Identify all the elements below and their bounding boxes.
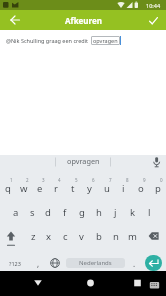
button[interactable]: , [30,255,46,271]
button[interactable]: Nederlands [66,258,125,268]
button[interactable]: c [57,224,73,248]
staticText: m [128,230,137,243]
staticText: t [71,182,75,195]
button[interactable] [111,271,166,296]
button[interactable]: u [98,176,115,200]
staticText: , [37,258,40,269]
button[interactable]: y [81,176,98,200]
button[interactable]: z [25,224,41,248]
button[interactable]: b [90,224,107,248]
staticText: c [63,230,68,243]
button[interactable]: g [73,200,90,224]
staticText: y [87,182,92,195]
staticText: . [133,258,136,269]
staticText: h [96,206,102,219]
button[interactable] [0,224,25,248]
button[interactable]: h [90,200,107,224]
staticText: e [37,182,43,195]
button[interactable]: p [149,176,166,200]
button[interactable]: s [24,200,40,224]
staticText: 9 [143,177,146,183]
staticText: 4 [58,177,61,183]
button[interactable]: m [124,224,141,248]
staticText: 8 [126,177,129,183]
staticText: ?123 [9,260,21,267]
button[interactable]: r [48,176,64,200]
button[interactable] [46,255,64,271]
button[interactable]: opvragen [67,156,100,166]
button[interactable]: v [73,224,90,248]
staticText: l [148,206,151,219]
button[interactable]: . [127,255,141,271]
button[interactable]: e [32,176,48,200]
button[interactable]: o [132,176,149,200]
staticText: v [79,230,84,243]
button[interactable] [147,14,159,26]
button[interactable]: x [41,224,57,248]
staticText: b [96,230,102,243]
button[interactable]: ?123 [0,255,30,271]
staticText: 2 [26,177,29,183]
button[interactable]: opvragen [93,37,118,44]
staticText: r [54,182,58,195]
staticText: a [13,206,19,219]
button[interactable]: q [0,176,16,200]
staticText: j [114,206,117,219]
staticText: opvragen [93,37,118,44]
staticText: d [45,206,51,219]
button[interactable]: l [141,200,158,224]
staticText: 7 [109,177,112,183]
button[interactable]: f [56,200,73,224]
button[interactable]: k [124,200,141,224]
button[interactable] [56,271,111,296]
staticText: Afkeuren [65,15,102,26]
button[interactable] [8,13,22,27]
staticText: o [138,182,144,195]
button[interactable]: j [107,200,124,224]
button[interactable]: d [40,200,56,224]
button[interactable]: w [16,176,32,200]
staticText: 3 [42,177,45,183]
staticText: z [31,230,36,243]
staticText: @Nik Schulling graag een credit [6,37,89,44]
button[interactable]: n [107,224,124,248]
button[interactable]: t [64,176,81,200]
staticText: k [130,206,136,219]
staticText: p [155,182,161,195]
staticText: q [5,182,11,195]
staticText: opvragen [67,156,100,166]
staticText: i [122,182,125,195]
staticText: f [63,206,67,219]
staticText: Nederlands [79,259,112,267]
button[interactable] [145,255,162,271]
staticText: w [20,182,28,195]
staticText: x [46,230,52,243]
staticText: 6 [92,177,95,183]
staticText: u [104,182,110,195]
staticText: 0 [160,177,163,183]
button[interactable]: i [115,176,132,200]
staticText: 10:44 [146,2,161,9]
button[interactable]: a [8,200,24,224]
button[interactable] [0,271,56,296]
staticText: g [79,206,85,219]
staticText: 1 [10,177,13,183]
staticText: 5 [75,177,78,183]
staticText: s [30,206,35,219]
button[interactable] [141,224,166,248]
staticText: n [113,230,119,243]
